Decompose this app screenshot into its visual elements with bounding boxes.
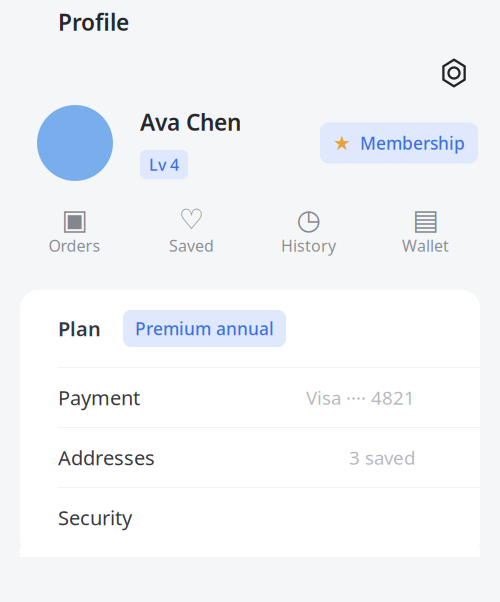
staticText: Premium annual: [135, 317, 274, 340]
staticText: Orders: [48, 235, 100, 256]
staticText: ★: [333, 132, 351, 154]
button[interactable]: ♡: [133, 207, 250, 253]
staticText: ▤: [412, 204, 438, 235]
staticText: Lv 4: [149, 154, 179, 175]
staticText: Addresses: [58, 444, 155, 471]
staticText: Payment: [58, 384, 140, 411]
staticText: Security: [58, 504, 132, 531]
button[interactable]: Settings: [432, 51, 476, 95]
staticText: ▣: [61, 204, 87, 235]
staticText: Plan: [58, 315, 101, 342]
staticText: History: [281, 235, 336, 256]
staticText: 3 saved: [349, 445, 415, 470]
button[interactable]: Security: [20, 488, 480, 547]
staticText: Ava Chen: [140, 107, 241, 137]
staticText: Wallet: [402, 235, 449, 256]
staticText: Visa ···· 4821: [306, 385, 415, 410]
staticText: ◷: [296, 204, 320, 235]
button[interactable]: Payment: [20, 368, 480, 428]
staticText: Saved: [169, 235, 214, 256]
button[interactable]: ▤: [367, 207, 484, 253]
button[interactable]: Addresses: [20, 428, 480, 488]
button[interactable]: ▣: [16, 207, 133, 253]
staticText: Profile: [58, 7, 129, 37]
staticText: ♡: [179, 204, 204, 235]
button[interactable]: ◷: [250, 207, 367, 253]
staticText: Membership: [360, 131, 465, 154]
